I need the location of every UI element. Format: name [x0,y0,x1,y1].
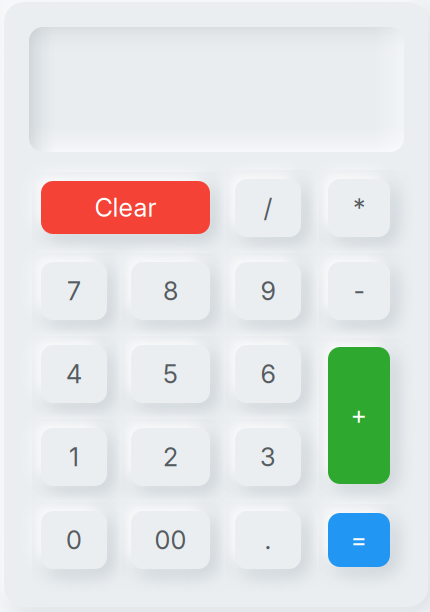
button[interactable]: 9 [235,262,301,320]
staticText: * [353,193,365,223]
button[interactable]: 00 [131,511,210,569]
staticText: = [350,525,367,555]
staticText: 3 [260,442,276,472]
staticText: 00 [154,525,186,555]
staticText: 2 [163,442,178,472]
button[interactable]: 0 [41,511,107,569]
staticText: 0 [66,525,82,555]
staticText: - [353,276,364,306]
staticText: 6 [260,359,275,389]
button[interactable]: Clear [41,181,210,234]
button[interactable]: * [328,179,390,237]
staticText: / [263,193,272,223]
button[interactable]: 5 [131,345,210,403]
button[interactable]: + [328,347,390,484]
button[interactable]: 7 [41,262,107,320]
staticText: 7 [67,276,81,306]
button[interactable]: 1 [41,428,107,486]
button[interactable]: 4 [41,345,107,403]
button[interactable]: 3 [235,428,301,486]
staticText: 5 [163,359,178,389]
staticText: 8 [163,276,178,306]
staticText: 4 [66,359,82,389]
button[interactable]: 6 [235,345,301,403]
staticText: 1 [69,442,79,472]
button[interactable]: 8 [131,262,210,320]
button[interactable]: . [235,511,301,569]
staticText: + [350,400,367,431]
button[interactable]: - [328,262,390,320]
staticText: Clear [94,192,156,223]
button[interactable]: = [328,513,390,567]
button[interactable]: / [235,179,301,237]
staticText: 9 [260,276,275,306]
staticText: . [264,525,271,555]
button[interactable]: 2 [131,428,210,486]
